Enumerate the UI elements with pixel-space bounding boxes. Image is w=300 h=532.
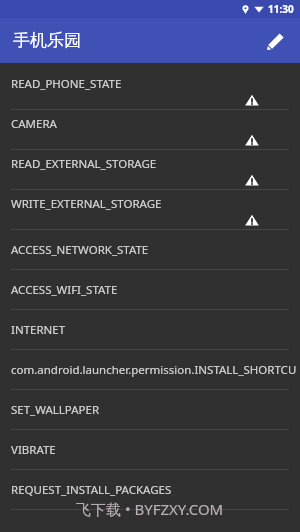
staticText: 11:30 xyxy=(268,2,294,16)
staticText: WRITE_EXTERNAL_STORAGE xyxy=(11,196,162,212)
staticText: 飞下载 • BYFZXY.COM xyxy=(76,499,224,519)
staticText: INTERNET xyxy=(11,322,66,338)
button[interactable]: SET_WALLPAPER xyxy=(0,390,300,430)
staticText: 手机乐园 xyxy=(13,30,81,51)
button[interactable]: READ_EXTERNAL_STORAGE xyxy=(0,150,300,190)
button[interactable]: WRITE_EXTERNAL_STORAGE xyxy=(0,190,300,230)
button[interactable]: com.android.launcher.permission.INSTALL_… xyxy=(0,350,300,390)
staticText: SET_WALLPAPER xyxy=(11,402,100,418)
button[interactable]: ACCESS_NETWORK_STATE xyxy=(0,230,300,270)
staticText: VIBRATE xyxy=(11,442,56,458)
staticText: ACCESS_NETWORK_STATE xyxy=(11,242,149,258)
button[interactable]: REQUEST_INSTALL_PACKAGES xyxy=(0,470,300,510)
staticText: READ_EXTERNAL_STORAGE xyxy=(11,156,157,172)
staticText: ACCESS_WIFI_STATE xyxy=(11,282,118,298)
button[interactable]: VIBRATE xyxy=(0,430,300,470)
button[interactable]: Edit xyxy=(257,23,293,59)
staticText: READ_PHONE_STATE xyxy=(11,76,122,92)
staticText: com.android.launcher.permission.INSTALL_… xyxy=(11,362,300,378)
staticText: CAMERA xyxy=(11,116,57,132)
staticText: REQUEST_INSTALL_PACKAGES xyxy=(11,482,172,498)
button[interactable]: ACCESS_WIFI_STATE xyxy=(0,270,300,310)
button[interactable]: INTERNET xyxy=(0,310,300,350)
button[interactable]: READ_PHONE_STATE xyxy=(0,70,300,110)
button[interactable]: CAMERA xyxy=(0,110,300,150)
